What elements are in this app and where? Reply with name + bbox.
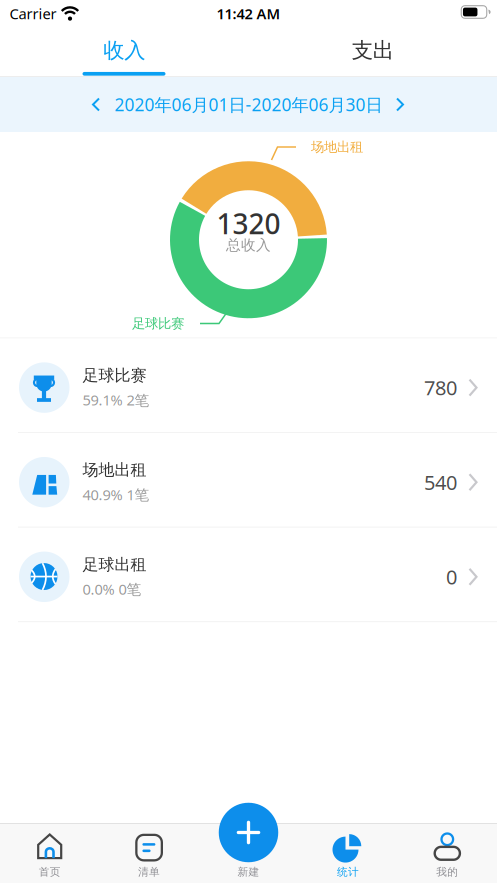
staticText: 总收入 (226, 236, 271, 254)
button[interactable] (386, 90, 414, 118)
staticText: 0 (446, 563, 457, 590)
button[interactable]: 足球出租 (0, 527, 497, 622)
staticText: Carrier (9, 4, 56, 23)
button[interactable]: 支出 (248, 28, 497, 73)
staticText: 40.9% 1笔 (82, 485, 149, 504)
staticText: 场地出租 (82, 460, 146, 480)
staticText: 1320 (216, 205, 280, 242)
button[interactable]: 场地出租 (0, 433, 497, 527)
button[interactable]: 足球比赛 (0, 338, 497, 433)
staticText: 0.0% 0笔 (82, 579, 141, 599)
staticText: 清单 (138, 865, 160, 878)
button[interactable] (82, 90, 110, 118)
staticText: 首页 (39, 865, 61, 878)
button[interactable]: 清单 (99, 823, 199, 883)
staticText: 我的 (436, 865, 458, 878)
button[interactable]: 我的 (398, 823, 497, 883)
staticText: 支出 (352, 37, 394, 64)
staticText: 780 (424, 374, 457, 401)
staticText: 新建 (237, 865, 259, 878)
button[interactable]: 首页 (0, 823, 99, 883)
button[interactable]: 统计 (298, 823, 398, 883)
staticText: 2020年06月01日-2020年06月30日 (114, 93, 382, 116)
staticText: 收入 (103, 37, 145, 64)
staticText: 足球出租 (82, 555, 146, 574)
button[interactable]: 收入 (0, 28, 248, 73)
button[interactable]: 新建 (199, 823, 298, 883)
staticText: 统计 (337, 865, 359, 878)
staticText: 足球比赛 (132, 315, 184, 332)
staticText: 540 (424, 469, 457, 495)
button[interactable] (219, 803, 278, 862)
staticText: 足球比赛 (82, 365, 146, 385)
staticText: 59.1% 2笔 (82, 390, 149, 410)
staticText: 11:42 AM (216, 4, 280, 23)
staticText: 场地出租 (311, 139, 363, 155)
